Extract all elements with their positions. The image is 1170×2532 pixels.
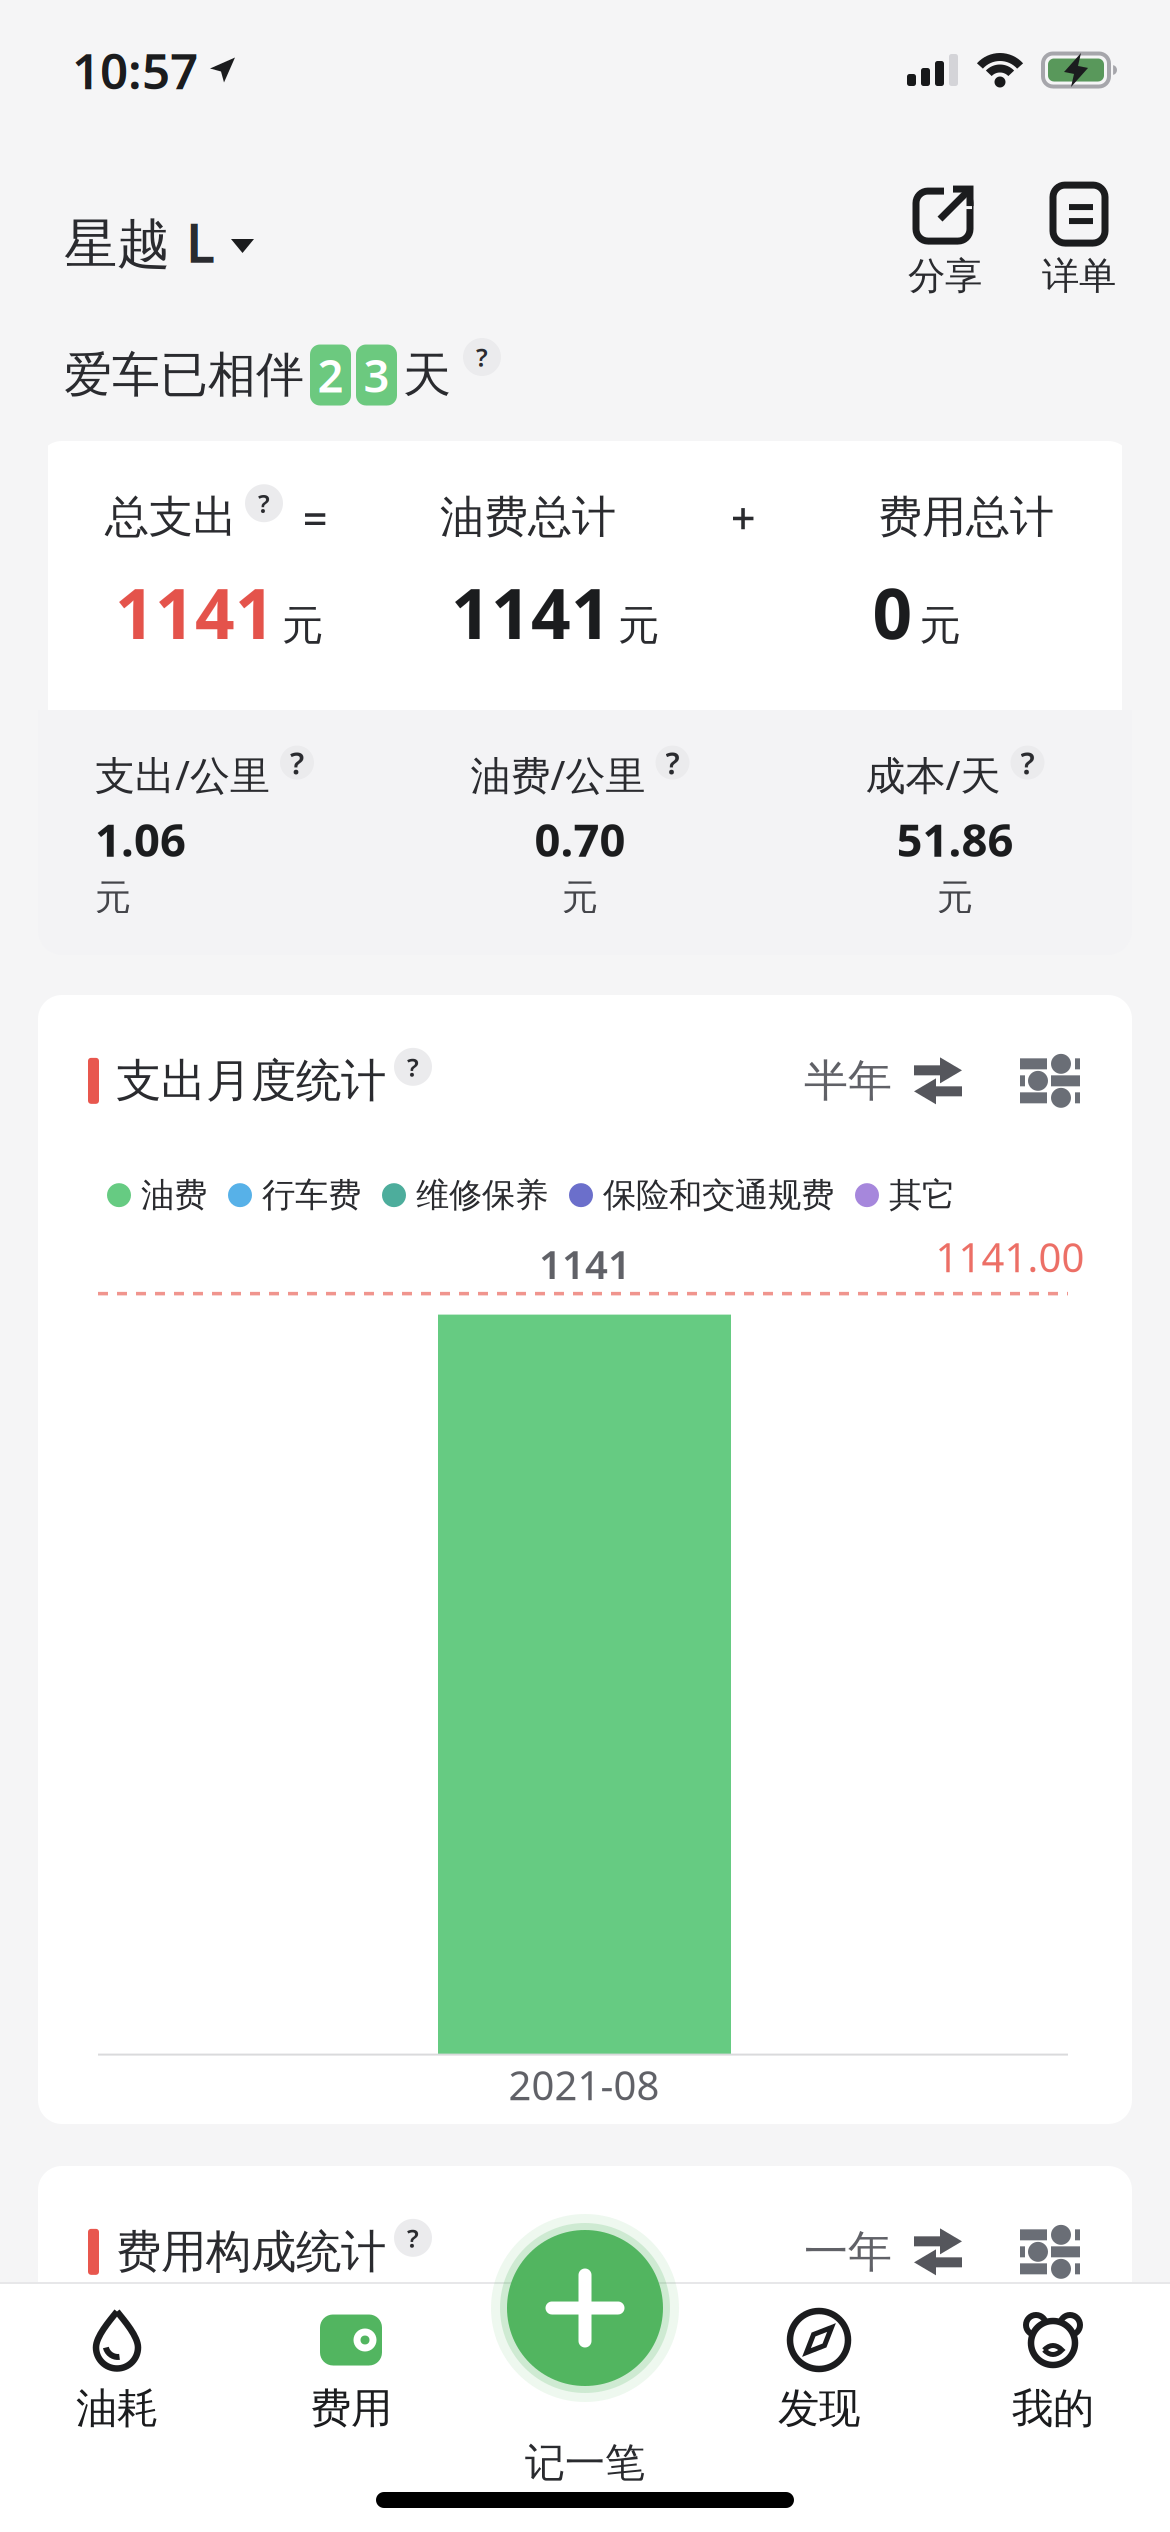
staticText: 星越 L: [64, 207, 215, 277]
staticText: 成本/天: [865, 748, 1000, 801]
staticText: 总支出: [105, 490, 237, 544]
staticText: 2: [317, 345, 343, 405]
staticText: ?: [1020, 742, 1034, 783]
staticText: ?: [665, 742, 679, 783]
staticText: 爱车已相伴: [64, 345, 304, 404]
staticText: 51.86: [896, 809, 1013, 869]
staticText: 1141: [539, 1237, 631, 1290]
button[interactable]: 记一笔: [487, 2210, 683, 2406]
button[interactable]: 费用: [234, 2309, 468, 2434]
staticText: 1141: [115, 566, 275, 658]
staticText: 元: [95, 875, 131, 919]
staticText: 油耗: [76, 2383, 158, 2434]
staticText: 行车费: [262, 1175, 361, 1216]
staticText: ?: [258, 486, 270, 520]
staticText: =: [302, 488, 327, 546]
staticText: 费用总计: [878, 490, 1054, 544]
staticText: 分享: [908, 253, 982, 299]
button[interactable]: 油耗: [0, 2309, 234, 2434]
staticText: ?: [407, 2221, 419, 2255]
button[interactable]: 切换周期: [804, 1054, 962, 1108]
staticText: 费用构成统计: [116, 2224, 386, 2280]
staticText: 元: [562, 875, 598, 919]
staticText: 3: [363, 345, 389, 405]
button[interactable]: 分享: [908, 185, 982, 299]
staticText: 详单: [1042, 253, 1116, 299]
staticText: 元: [937, 875, 973, 919]
staticText: ?: [407, 1050, 419, 1084]
staticText: 一年: [804, 2225, 892, 2279]
staticText: 发现: [778, 2383, 860, 2434]
staticText: 0.70: [534, 809, 625, 869]
button[interactable]: 帮助: [463, 356, 501, 394]
staticText: 油费总计: [440, 490, 616, 544]
staticText: 元: [282, 600, 323, 651]
staticText: 费用: [310, 2383, 392, 2434]
button[interactable]: 筛选: [1020, 1053, 1080, 1108]
button[interactable]: 详单: [1042, 185, 1116, 299]
button[interactable]: 发现: [702, 2309, 936, 2434]
staticText: 1141: [451, 566, 611, 658]
staticText: 元: [919, 600, 960, 651]
staticText: 1.06: [95, 809, 186, 869]
staticText: 记一笔: [525, 2438, 645, 2487]
staticText: 油费: [141, 1175, 207, 1216]
staticText: ?: [290, 742, 304, 783]
staticText: 天: [403, 345, 451, 404]
staticText: 我的: [1012, 2383, 1094, 2434]
staticText: +: [730, 488, 755, 546]
staticText: 油费/公里: [470, 748, 645, 801]
button[interactable]: 帮助: [394, 1062, 432, 1100]
staticText: 元: [618, 600, 659, 651]
staticText: 支出/公里: [95, 748, 270, 801]
button[interactable]: 帮助: [394, 2233, 432, 2271]
staticText: 半年: [804, 1054, 892, 1108]
staticText: 0: [872, 566, 912, 658]
button[interactable]: 筛选: [1020, 2224, 1080, 2279]
button[interactable]: 我的: [936, 2309, 1170, 2434]
staticText: ?: [476, 340, 488, 374]
staticText: 1141.00: [935, 1230, 1084, 1283]
button[interactable]: 切换车辆: [64, 207, 254, 277]
button[interactable]: 帮助: [245, 498, 283, 536]
staticText: 维修保养: [416, 1175, 548, 1216]
staticText: 2021-08: [508, 2058, 659, 2111]
staticText: 10:57: [72, 37, 198, 103]
staticText: 保险和交通规费: [603, 1175, 834, 1216]
staticText: 其它: [889, 1175, 955, 1216]
button[interactable]: 切换周期: [804, 2225, 962, 2279]
staticText: 支出月度统计: [116, 1053, 386, 1109]
